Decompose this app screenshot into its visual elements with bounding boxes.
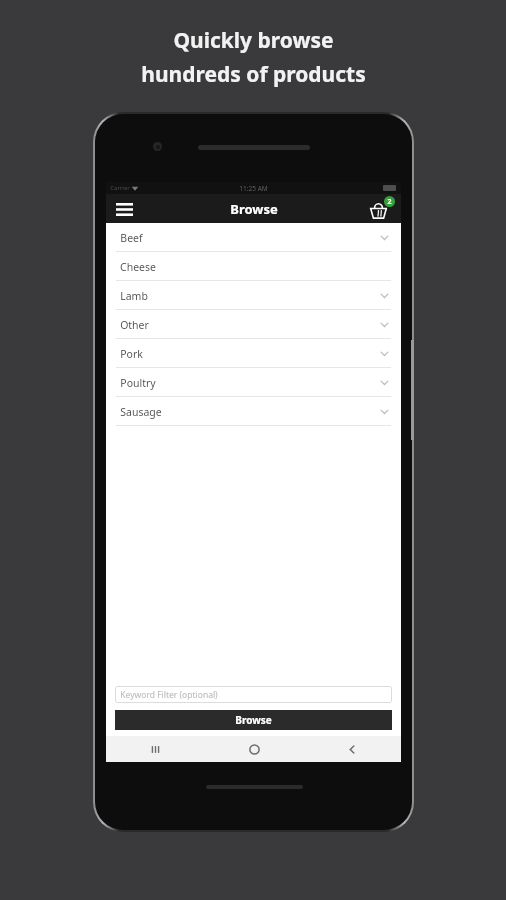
staticText: Carrier bbox=[110, 184, 130, 192]
staticText: Lamb bbox=[120, 289, 148, 303]
staticText: Cheese bbox=[120, 260, 156, 274]
button[interactable]: Keyword Filter (optional) bbox=[115, 686, 392, 703]
button[interactable]: Back bbox=[303, 736, 401, 762]
staticText: Sausage bbox=[120, 405, 162, 419]
staticText: Keyword Filter (optional) bbox=[120, 689, 218, 701]
button[interactable]: Cheese bbox=[106, 252, 401, 281]
staticText: hundreds of products bbox=[141, 60, 366, 89]
staticText: Beef bbox=[120, 231, 143, 245]
button[interactable]: Lamb bbox=[106, 281, 401, 310]
button[interactable]: Other bbox=[106, 310, 401, 339]
staticText: 11:25 AM bbox=[239, 184, 268, 193]
button[interactable]: Cart, 2 items bbox=[369, 196, 395, 222]
staticText: Quickly browse bbox=[173, 26, 334, 55]
staticText: Pork bbox=[120, 347, 143, 361]
staticText: Browse bbox=[235, 713, 272, 727]
staticText: Other bbox=[120, 318, 149, 332]
staticText: Poultry bbox=[120, 376, 156, 390]
button[interactable]: Sausage bbox=[106, 397, 401, 426]
button[interactable]: Pork bbox=[106, 339, 401, 368]
button[interactable]: Menu bbox=[113, 198, 135, 220]
staticText: 2 bbox=[387, 197, 392, 207]
button[interactable]: Home bbox=[205, 736, 303, 762]
button[interactable]: Recents bbox=[106, 736, 205, 762]
button[interactable]: Beef bbox=[106, 223, 401, 252]
button[interactable]: Poultry bbox=[106, 368, 401, 397]
staticText: Browse bbox=[230, 200, 278, 218]
button[interactable]: Browse bbox=[115, 710, 392, 730]
